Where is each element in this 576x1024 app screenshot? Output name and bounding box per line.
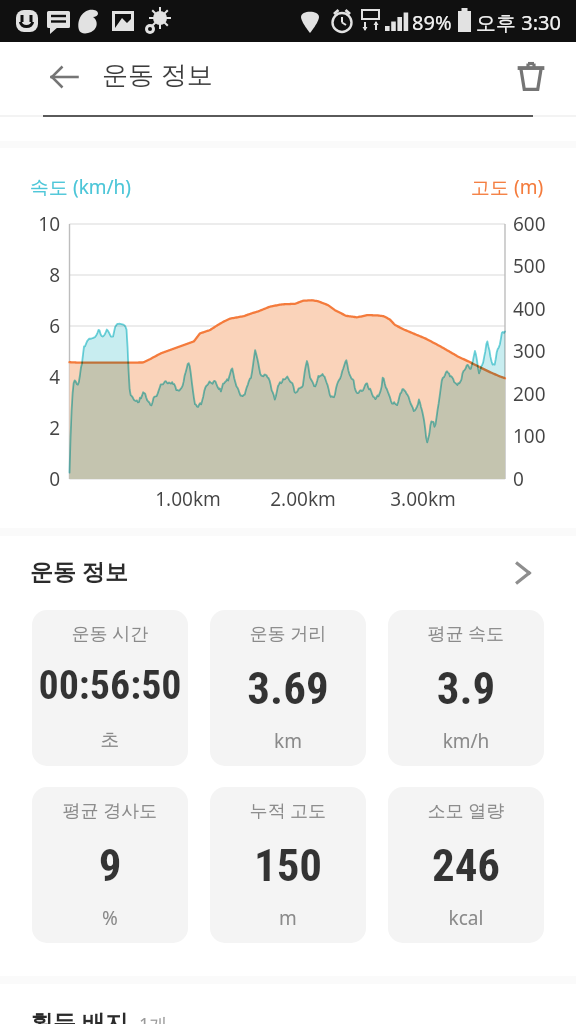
staticText: 누적 고도 (210, 798, 366, 823)
button[interactable]: 운동 시간 (32, 610, 188, 766)
staticText: 운동 시간 (32, 621, 188, 646)
staticText: 0 (513, 466, 561, 492)
staticText: km (210, 728, 366, 754)
staticText: 속도 (km/h) (30, 174, 132, 200)
staticText: 고도 (m) (471, 174, 544, 200)
staticText: 6 (30, 313, 60, 339)
staticText: 150 (210, 839, 366, 892)
button[interactable]: 누적 고도 (210, 787, 366, 943)
button[interactable]: 운동 정보 (0, 536, 576, 610)
button[interactable]: 운동 거리 (210, 610, 366, 766)
staticText: 3.9 (388, 662, 544, 715)
staticText: 10 (30, 211, 60, 237)
staticText: 소모 열량 (388, 798, 544, 823)
staticText: kcal (388, 905, 544, 931)
button[interactable]: 획득 배지 (0, 984, 576, 1024)
staticText: 00:56:50 (32, 662, 188, 709)
staticText: 초 (32, 728, 188, 752)
staticText: 운동 정보 (102, 56, 213, 92)
staticText: 3.00km (378, 486, 468, 512)
staticText: 획득 배지 (30, 1006, 128, 1024)
staticText: m (210, 905, 366, 931)
staticText: 오후 3:30 (476, 9, 561, 36)
staticText: 89% (412, 9, 452, 36)
staticText: 0 (30, 466, 60, 492)
button[interactable]: Delete (498, 42, 570, 116)
staticText: 300 (513, 338, 561, 364)
button[interactable]: 평균 경사도 (32, 787, 188, 943)
staticText: 4 (30, 364, 60, 390)
staticText: 3.69 (210, 662, 366, 715)
button[interactable]: 평균 속도 (388, 610, 544, 766)
staticText: 평균 속도 (388, 621, 544, 646)
staticText: 9 (32, 839, 188, 892)
staticText: 1.00km (143, 486, 233, 512)
staticText: km/h (388, 728, 544, 754)
staticText: 8 (30, 262, 60, 288)
staticText: 평균 경사도 (32, 798, 188, 823)
staticText: 246 (388, 839, 544, 892)
staticText: 200 (513, 381, 561, 407)
staticText: 운동 거리 (210, 621, 366, 646)
staticText: 운동 정보 (30, 555, 128, 586)
staticText: 1개 (139, 1012, 168, 1024)
staticText: 400 (513, 296, 561, 322)
staticText: 600 (513, 211, 561, 237)
button[interactable]: Back (34, 40, 94, 114)
staticText: 2.00km (258, 486, 348, 512)
staticText: % (32, 905, 188, 931)
staticText: 2 (30, 415, 60, 441)
staticText: 500 (513, 253, 561, 279)
staticText: 100 (513, 423, 561, 449)
button[interactable]: 소모 열량 (388, 787, 544, 943)
